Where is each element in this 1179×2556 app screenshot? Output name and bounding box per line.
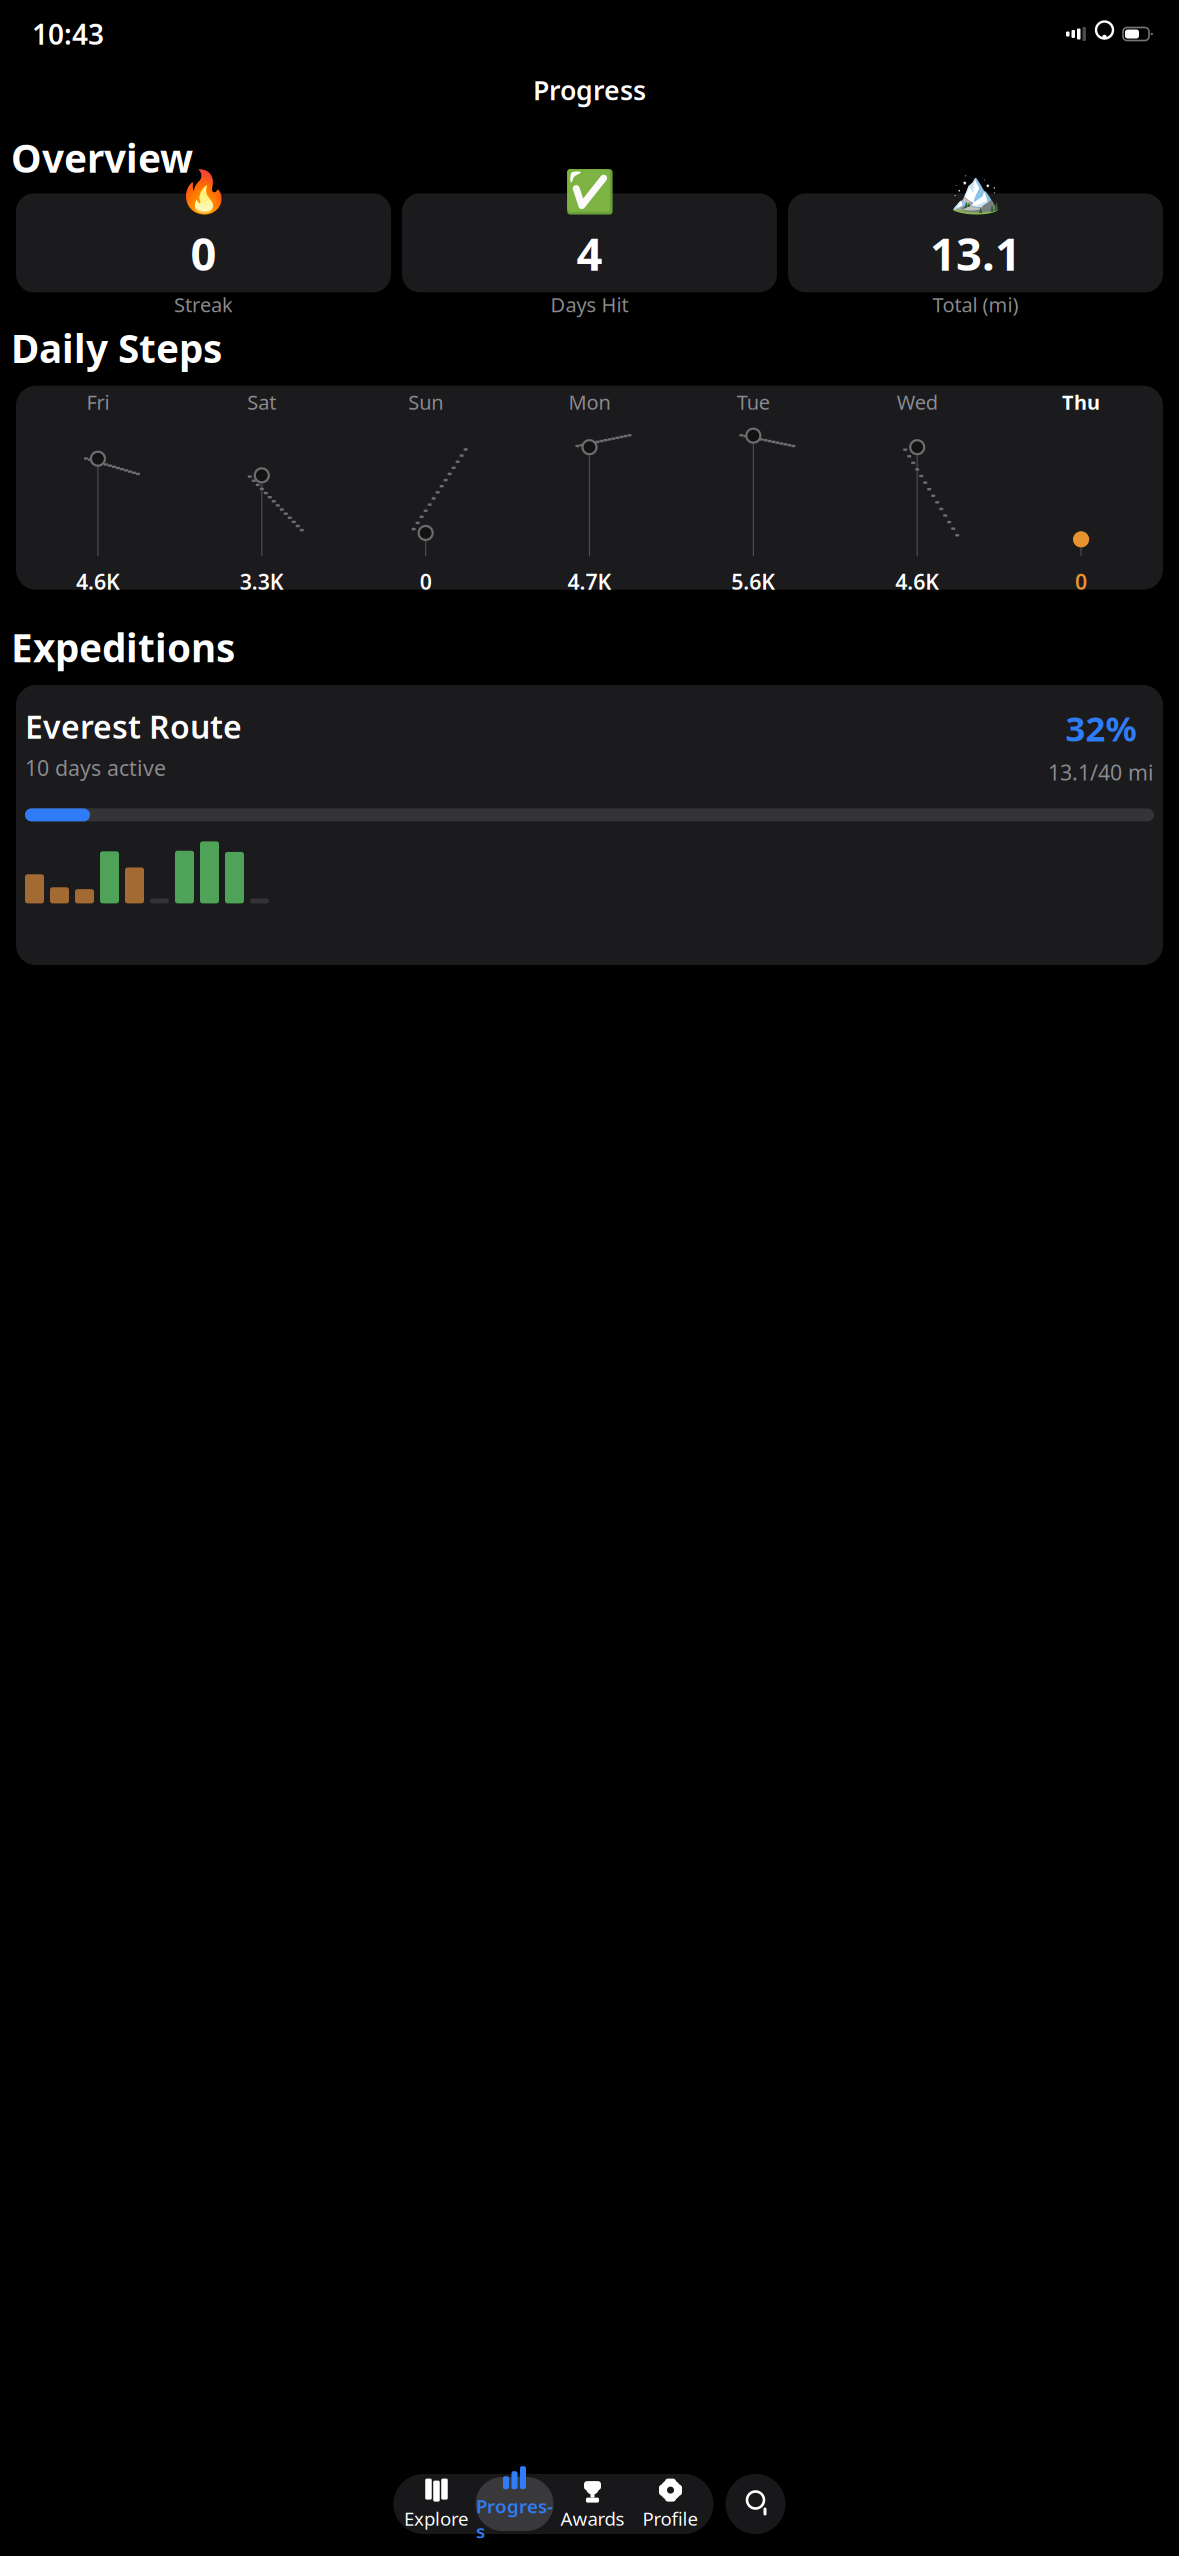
button[interactable]: ✅ xyxy=(402,193,777,292)
staticText: 13.1/40 mi xyxy=(1048,758,1154,786)
staticText: Daily Steps xyxy=(11,322,222,374)
staticText: 5.6K xyxy=(731,567,775,596)
staticText: Total (mi) xyxy=(932,291,1018,318)
button[interactable]: Search xyxy=(725,2474,785,2534)
staticText: Expeditions xyxy=(11,622,235,673)
button[interactable]: Profile xyxy=(631,2477,709,2531)
staticText: 10 days active xyxy=(25,753,166,782)
button[interactable]: Awards xyxy=(553,2477,631,2531)
staticText: Progress xyxy=(533,72,646,108)
staticText: 3.3K xyxy=(240,567,284,596)
staticText: 4.6K xyxy=(895,567,939,596)
staticText: 0 xyxy=(420,567,432,596)
staticText: Mon xyxy=(568,389,610,415)
staticText: 4.6K xyxy=(76,567,120,596)
staticText: Progress xyxy=(476,2494,553,2543)
staticText: 32% xyxy=(1065,705,1136,751)
staticText: 4.7K xyxy=(567,567,611,596)
staticText: Explore xyxy=(404,2506,469,2531)
staticText: Awards xyxy=(560,2506,624,2531)
staticText: 4 xyxy=(576,223,602,283)
staticText: Sun xyxy=(408,389,443,415)
staticText: Wed xyxy=(897,389,938,415)
staticText: ✅ xyxy=(564,168,615,215)
staticText: Tue xyxy=(737,389,770,415)
staticText: Everest Route xyxy=(25,705,242,747)
staticText: Profile xyxy=(642,2506,698,2531)
staticText: 10:43 xyxy=(32,15,104,53)
staticText: 0 xyxy=(190,223,216,283)
staticText: 🔥 xyxy=(178,168,229,215)
staticText: Overview xyxy=(11,132,193,183)
staticText: Sat xyxy=(247,389,276,415)
button[interactable]: 🏔️ xyxy=(788,193,1163,292)
staticText: 13.1 xyxy=(930,223,1021,283)
button[interactable]: 🔥 xyxy=(16,193,391,292)
staticText: Thu xyxy=(1062,389,1100,415)
staticText: Streak xyxy=(174,291,233,318)
staticText: Days Hit xyxy=(550,291,628,318)
staticText: Fri xyxy=(86,389,109,415)
button[interactable]: Explore xyxy=(397,2477,475,2531)
staticText: 0 xyxy=(1075,567,1087,596)
staticText: 🏔️ xyxy=(950,168,1001,215)
button[interactable]: Progress xyxy=(475,2477,553,2531)
button[interactable]: Everest Route xyxy=(16,685,1163,965)
